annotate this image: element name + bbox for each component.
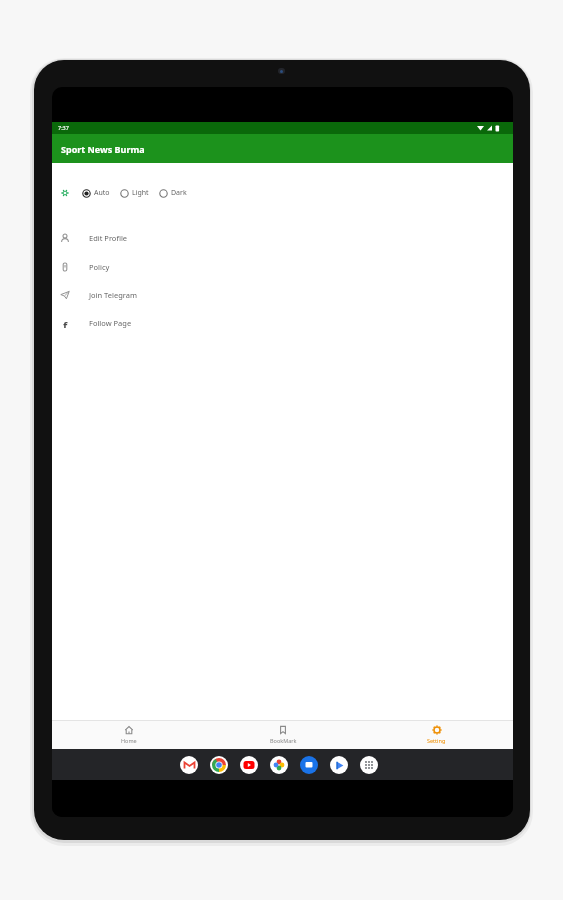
button[interactable] <box>180 756 198 774</box>
staticText: Auto <box>94 188 110 198</box>
staticText: Join Telegram <box>89 290 137 300</box>
button[interactable]: Edit Profile <box>60 230 260 246</box>
staticText: Setting <box>427 737 446 744</box>
button[interactable]: Dark <box>159 188 187 198</box>
button[interactable] <box>210 756 228 774</box>
button[interactable]: Light <box>120 188 149 198</box>
staticText: Sport News Burma <box>61 143 145 155</box>
button[interactable]: f <box>60 315 260 331</box>
staticText: Edit Profile <box>89 233 128 243</box>
staticText: BookMark <box>270 737 297 744</box>
staticText: Follow Page <box>89 318 132 328</box>
button[interactable] <box>360 756 378 774</box>
button[interactable] <box>300 756 318 774</box>
button[interactable]: Join Telegram <box>60 287 260 303</box>
staticText: 7:37 <box>58 124 69 131</box>
button[interactable]: Policy <box>60 259 260 275</box>
staticText: Policy <box>89 262 110 272</box>
button[interactable] <box>240 756 258 774</box>
button[interactable] <box>330 756 348 774</box>
button[interactable]: Setting <box>360 720 513 749</box>
staticText: Light <box>132 188 149 198</box>
button[interactable]: Auto <box>82 188 110 198</box>
staticText: Dark <box>171 188 187 198</box>
button[interactable]: Home <box>52 720 206 749</box>
button[interactable]: BookMark <box>206 720 360 749</box>
button[interactable] <box>270 756 288 774</box>
staticText: f <box>63 318 68 328</box>
staticText: Home <box>121 737 137 744</box>
